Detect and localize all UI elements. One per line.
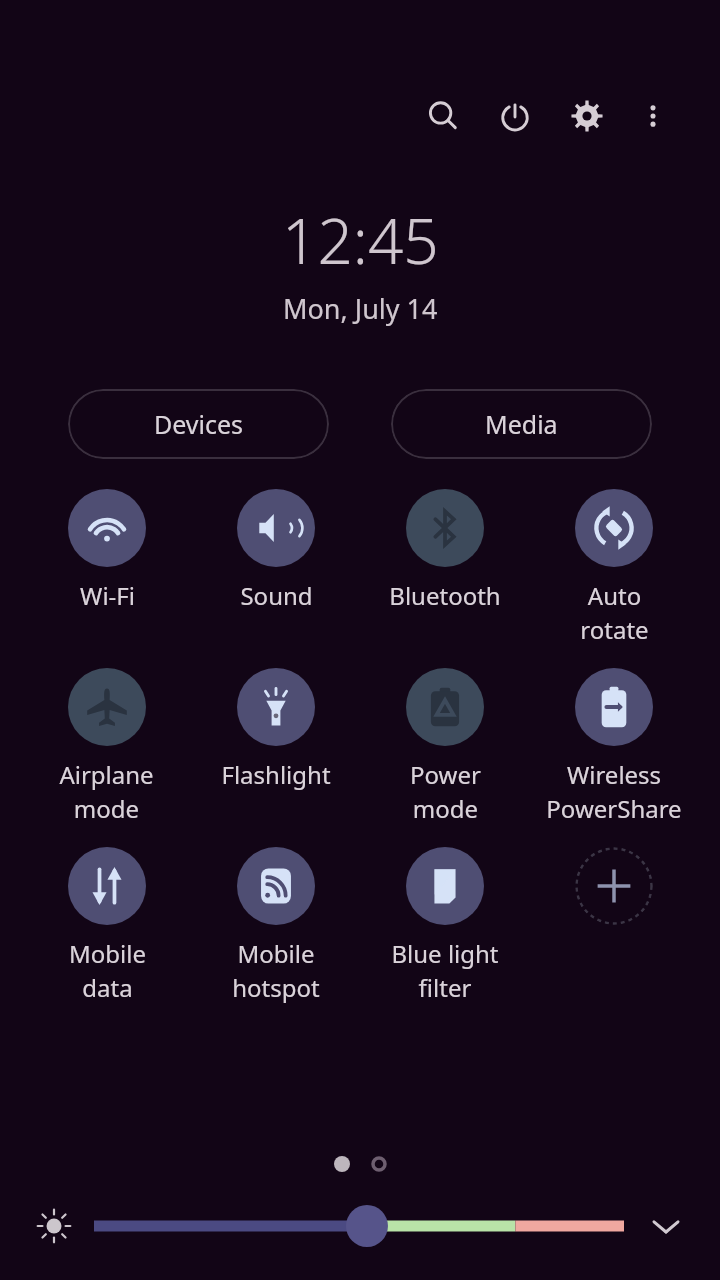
button[interactable]: Airplane mode: [59, 668, 154, 825]
staticText: 12:45: [282, 198, 439, 282]
button[interactable]: Page 2: [371, 1156, 387, 1172]
button[interactable]: Mobile data: [68, 847, 146, 1004]
button[interactable]: Flashlight: [221, 668, 331, 791]
button[interactable]: Sound: [237, 489, 315, 612]
button[interactable]: Brightness: [26, 1198, 82, 1254]
button[interactable]: Auto rotate: [575, 489, 653, 646]
staticText: Media: [485, 407, 558, 441]
staticText: Airplane mode: [59, 758, 154, 825]
button[interactable]: Expand: [638, 1198, 694, 1254]
button[interactable]: Brightness slider: [94, 1202, 624, 1250]
staticText: Mobile data: [69, 937, 146, 1004]
button[interactable]: Wireless PowerShare: [546, 668, 682, 825]
button[interactable]: Search: [416, 96, 470, 136]
staticText: Devices: [154, 407, 244, 441]
button[interactable]: More options: [626, 96, 680, 136]
staticText: Mon, July 14: [283, 290, 438, 327]
button[interactable]: Mobile hotspot: [232, 847, 320, 1004]
button[interactable]: Power mode: [406, 668, 484, 825]
button[interactable]: Bluetooth: [389, 489, 501, 612]
button[interactable]: Media: [391, 389, 652, 459]
staticText: Blue light filter: [391, 937, 499, 1004]
staticText: Wi-Fi: [80, 579, 135, 612]
button[interactable]: Settings: [560, 96, 614, 136]
button[interactable]: Wi-Fi: [68, 489, 146, 612]
button[interactable]: Blue light filter: [391, 847, 499, 1004]
staticText: Power mode: [410, 758, 481, 825]
staticText: Flashlight: [221, 758, 331, 791]
staticText: Auto rotate: [580, 579, 649, 646]
button[interactable]: Add tile: [575, 847, 653, 925]
button[interactable]: Devices: [68, 389, 329, 459]
staticText: Sound: [240, 579, 313, 612]
button[interactable]: 12:45: [0, 198, 720, 327]
staticText: Mobile hotspot: [232, 937, 320, 1004]
button[interactable]: Page 1: [334, 1156, 350, 1172]
staticText: Bluetooth: [389, 579, 501, 612]
button[interactable]: Power: [488, 96, 542, 136]
staticText: Wireless PowerShare: [546, 758, 682, 825]
